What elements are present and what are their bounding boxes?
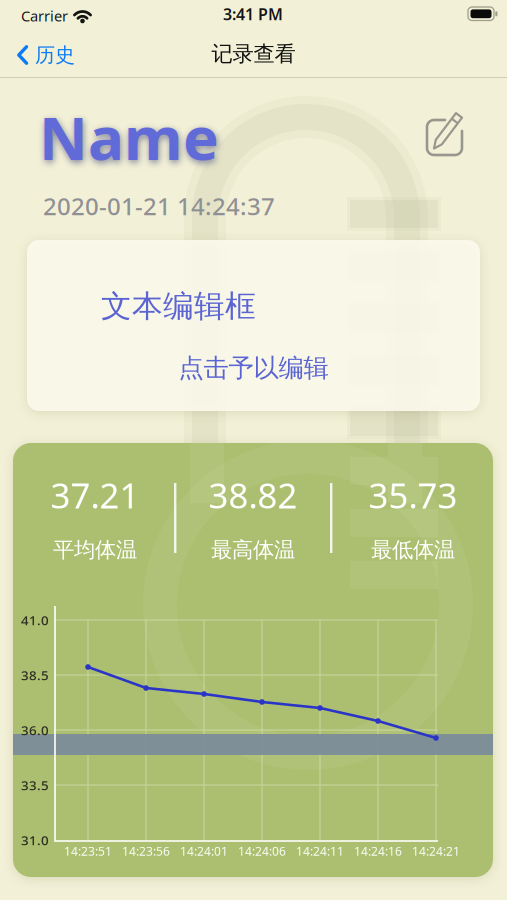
staticText: Name bbox=[39, 97, 219, 177]
staticText: 36.0 bbox=[21, 721, 49, 739]
staticText: 33.5 bbox=[21, 776, 49, 794]
staticText: 41.0 bbox=[21, 611, 49, 629]
staticText: 平均体温 bbox=[53, 537, 137, 563]
staticText: 文本编辑框 bbox=[101, 287, 256, 325]
staticText: 31.0 bbox=[21, 831, 49, 849]
staticText: 最高体温 bbox=[211, 537, 295, 563]
staticText: 14:24:16 bbox=[354, 843, 402, 859]
staticText: 历史 bbox=[35, 43, 75, 67]
staticText: 38.82 bbox=[208, 472, 297, 518]
button[interactable]: 文本编辑框 bbox=[27, 240, 480, 411]
staticText: 35.73 bbox=[368, 472, 457, 518]
staticText: 14:24:06 bbox=[238, 843, 286, 859]
button[interactable]: Edit name bbox=[420, 113, 468, 161]
staticText: 点击予以编辑 bbox=[178, 352, 328, 383]
staticText: 记录查看 bbox=[211, 41, 295, 67]
staticText: Carrier bbox=[21, 6, 68, 25]
staticText: 37.21 bbox=[50, 472, 139, 518]
button[interactable]: 历史 bbox=[17, 40, 75, 70]
staticText: 最低体温 bbox=[371, 537, 455, 563]
staticText: 14:23:51 bbox=[64, 843, 112, 859]
staticText: 14:24:11 bbox=[296, 843, 344, 859]
staticText: 38.5 bbox=[21, 666, 49, 684]
staticText: 3:41 PM bbox=[223, 3, 283, 25]
staticText: 14:24:01 bbox=[180, 843, 228, 859]
staticText: 14:23:56 bbox=[122, 843, 170, 859]
staticText: 14:24:21 bbox=[412, 843, 460, 859]
staticText: 2020-01-21 14:24:37 bbox=[43, 190, 275, 222]
